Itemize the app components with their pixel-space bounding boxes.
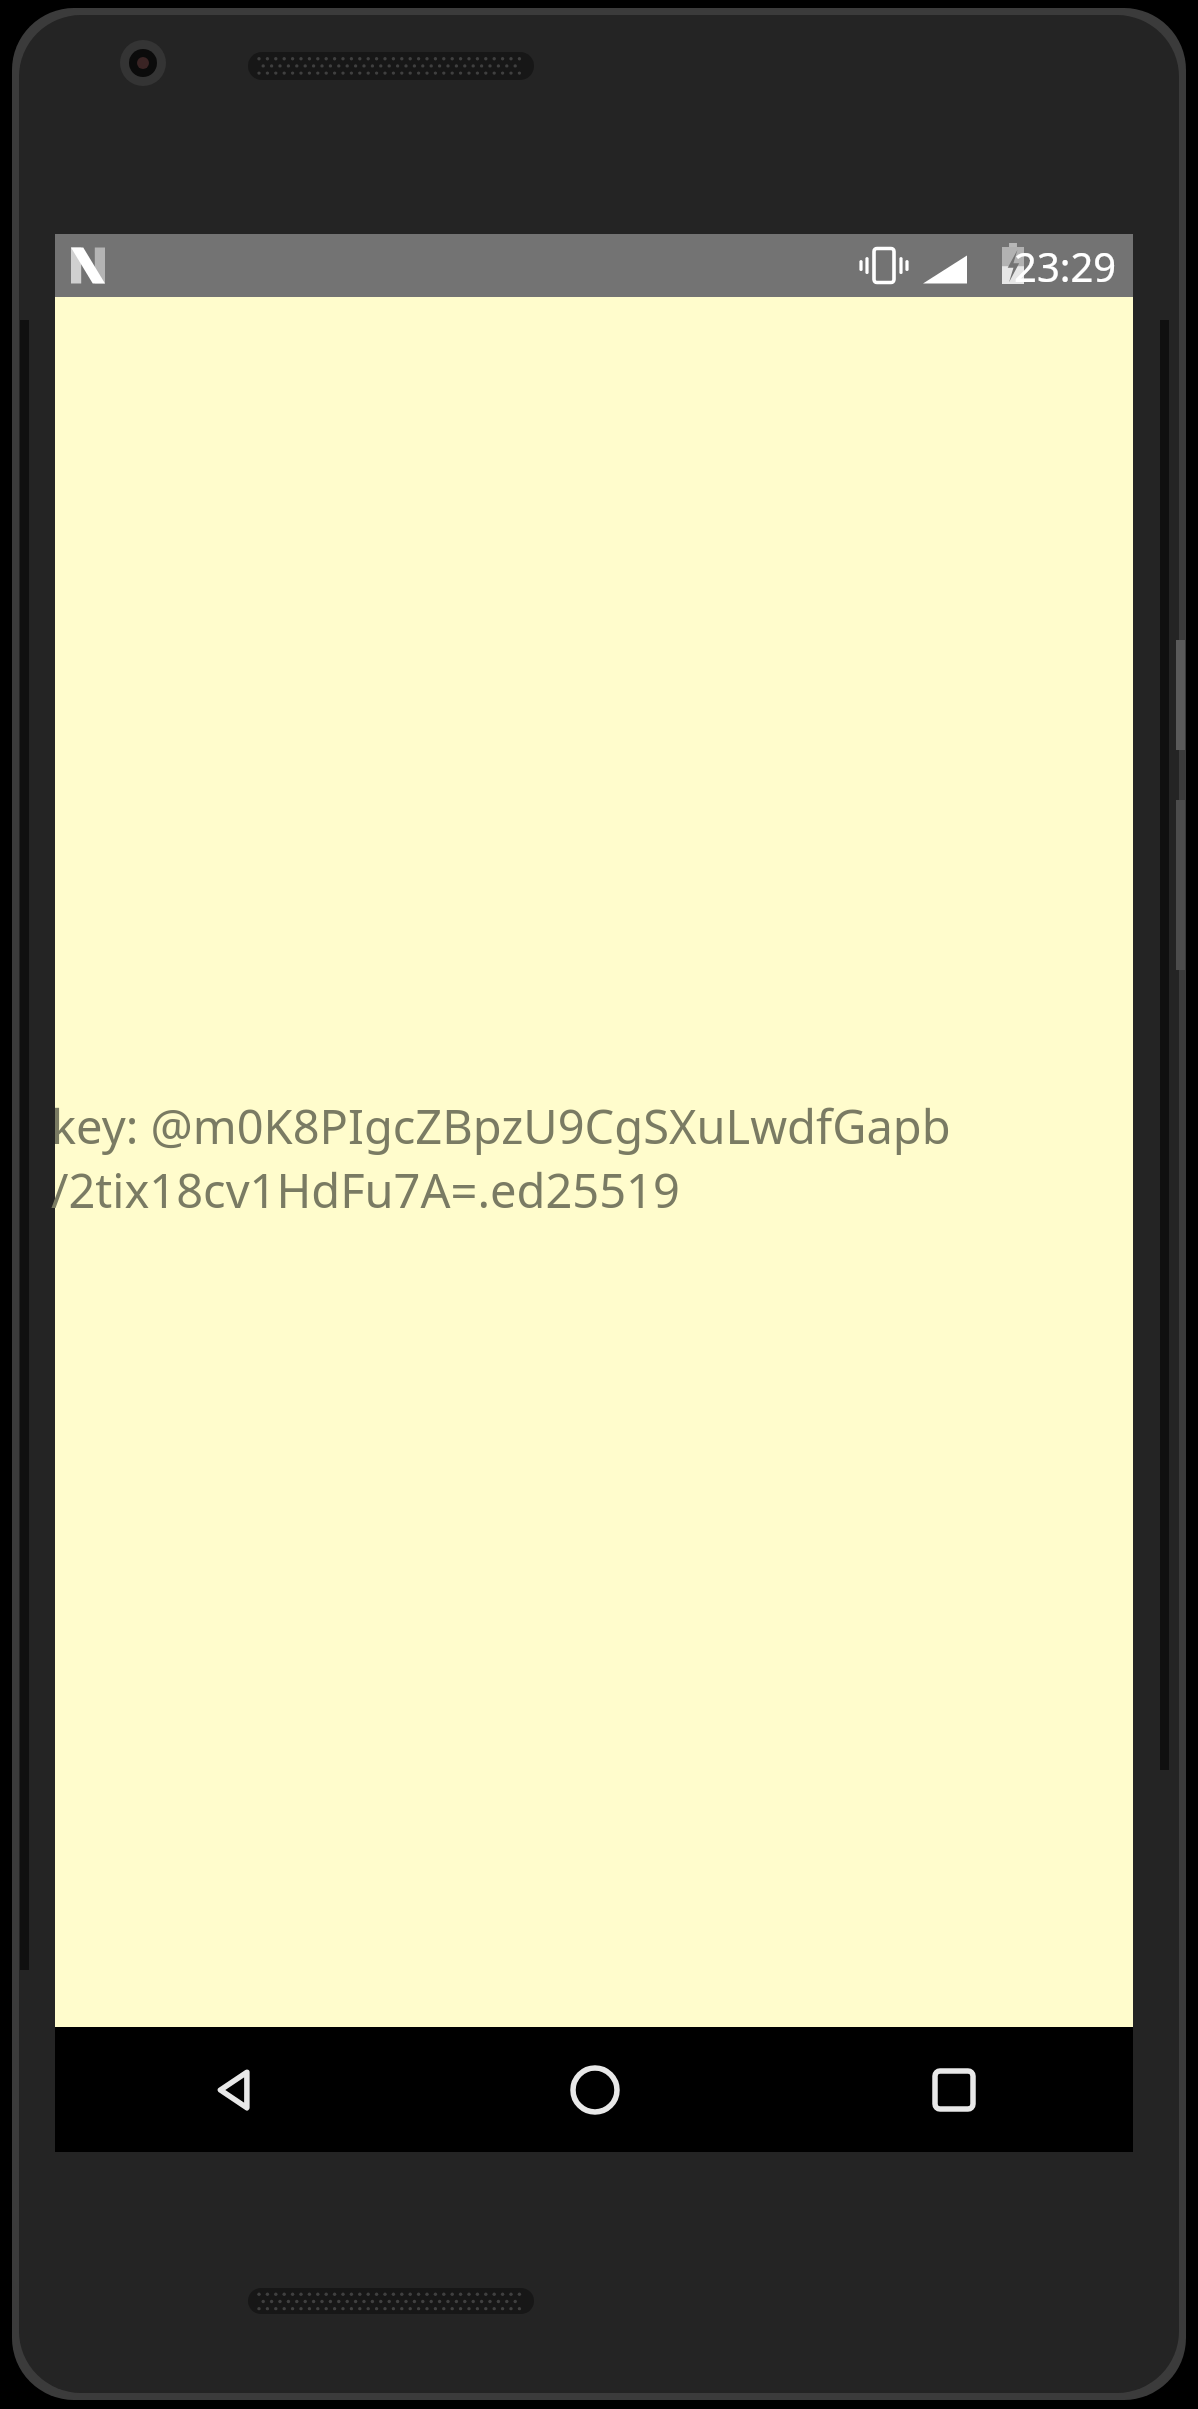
staticText: 23:29 bbox=[1014, 239, 1117, 293]
staticText: key: @m0K8PIgcZBpzU9CgSXuLwdfGapb bbox=[51, 1094, 951, 1158]
staticText: /2tix18cv1HdFu7A=.ed25519 bbox=[51, 1158, 680, 1222]
button[interactable]: Back bbox=[55, 2027, 415, 2152]
button[interactable]: Home bbox=[415, 2027, 774, 2152]
button[interactable]: Recent apps bbox=[774, 2027, 1133, 2152]
